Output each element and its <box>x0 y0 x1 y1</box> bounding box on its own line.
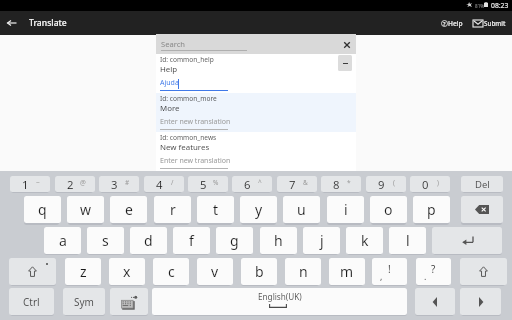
button[interactable]: 6 <box>232 176 272 192</box>
staticText: / <box>171 178 174 187</box>
staticText: c <box>168 262 175 281</box>
staticText: More <box>160 103 180 114</box>
button[interactable]: Right <box>460 288 501 315</box>
staticText: 2 <box>67 177 74 192</box>
button[interactable]: w <box>67 196 104 223</box>
staticText: Id: common_help <box>160 55 214 64</box>
button[interactable]: m <box>329 258 365 285</box>
staticText: 5 <box>200 177 207 192</box>
button[interactable]: Backspace <box>461 196 503 223</box>
button[interactable]: r <box>154 196 191 223</box>
button[interactable]: Remove <box>338 55 352 71</box>
staticText: Search <box>161 39 186 49</box>
button[interactable]: 1 <box>10 176 50 192</box>
other: Enter <box>461 236 473 245</box>
staticText: Ajuda <box>160 78 179 88</box>
button[interactable]: Left <box>415 288 455 315</box>
staticText: a <box>59 231 67 250</box>
staticText: Translate <box>29 17 67 29</box>
staticText: Help <box>448 19 463 28</box>
staticText: u <box>297 200 306 219</box>
button[interactable]: e <box>110 196 147 223</box>
button[interactable]: 2 <box>55 176 95 192</box>
staticText: Sym <box>74 295 94 309</box>
button[interactable]: 3 <box>99 176 139 192</box>
other: Shift <box>9 258 56 285</box>
staticText: New features <box>160 142 210 153</box>
button[interactable]: Id: common_help <box>156 54 356 93</box>
staticText: 6 <box>244 177 251 192</box>
button[interactable]: Id: common_more <box>156 93 356 132</box>
button[interactable]: . <box>416 258 451 285</box>
button[interactable]: 8 <box>321 176 361 192</box>
button[interactable]: o <box>370 196 407 223</box>
staticText: y <box>255 200 263 219</box>
button[interactable]: , <box>372 258 407 285</box>
button[interactable]: v <box>197 258 233 285</box>
staticText: q <box>38 200 47 219</box>
button[interactable]: q <box>24 196 61 223</box>
staticText: Del <box>475 178 490 191</box>
button[interactable]: ? <box>439 15 464 31</box>
staticText: w <box>80 200 92 219</box>
staticText: ? <box>443 20 446 27</box>
button[interactable]: l <box>389 227 426 254</box>
button[interactable]: z <box>65 258 101 285</box>
button[interactable]: Shift <box>9 258 56 285</box>
button[interactable]: b <box>241 258 277 285</box>
button[interactable]: y <box>240 196 277 223</box>
button[interactable]: i <box>327 196 364 223</box>
button[interactable]: Ctrl <box>9 288 54 315</box>
button[interactable]: Del <box>461 176 503 192</box>
staticText: p <box>427 200 436 219</box>
staticText: g <box>230 231 239 250</box>
staticText: 7 <box>289 177 296 192</box>
staticText: * <box>347 178 351 187</box>
button[interactable]: g <box>216 227 253 254</box>
button[interactable]: k <box>346 227 383 254</box>
other: Left <box>431 297 439 307</box>
staticText: o <box>384 200 393 219</box>
other: Backspace <box>475 205 489 214</box>
staticText: 4 <box>156 177 163 192</box>
staticText: % <box>213 178 219 187</box>
button[interactable]: t <box>197 196 234 223</box>
button[interactable]: Enter <box>432 227 502 254</box>
button[interactable]: 9 <box>366 176 406 192</box>
button[interactable]: Change keyboard <box>110 288 148 315</box>
button[interactable]: d <box>130 227 167 254</box>
button[interactable]: x <box>109 258 145 285</box>
button[interactable]: u <box>283 196 320 223</box>
staticText: 81% <box>475 3 485 9</box>
staticText: ^ <box>258 178 262 187</box>
staticText: Id: common_more <box>160 94 217 103</box>
other: Shift <box>460 258 507 285</box>
button[interactable]: s <box>87 227 124 254</box>
button[interactable]: Close <box>339 36 355 52</box>
staticText: t <box>213 200 219 219</box>
button[interactable]: a <box>44 227 81 254</box>
button[interactable]: 0 <box>410 176 450 192</box>
button[interactable]: f <box>173 227 210 254</box>
button[interactable]: 5 <box>188 176 228 192</box>
button[interactable]: j <box>303 227 340 254</box>
button[interactable]: 7 <box>277 176 317 192</box>
button[interactable]: p <box>413 196 450 223</box>
button[interactable]: Sym <box>63 288 105 315</box>
staticText: ! <box>388 262 391 276</box>
button[interactable]: n <box>285 258 321 285</box>
other: Right <box>477 297 485 307</box>
staticText: Help <box>160 64 178 75</box>
button[interactable]: Id: common_news <box>156 132 356 171</box>
button[interactable]: Back <box>0 11 24 35</box>
button[interactable]: 4 <box>144 176 184 192</box>
button[interactable]: Submit <box>472 15 505 31</box>
button[interactable]: h <box>260 227 297 254</box>
staticText: r <box>170 200 176 219</box>
button[interactable]: c <box>153 258 189 285</box>
staticText: m <box>340 262 354 281</box>
staticText: l <box>406 231 410 250</box>
staticText: ~ <box>36 178 40 187</box>
button[interactable]: English(UK) <box>152 288 407 315</box>
button[interactable]: Shift <box>460 258 507 285</box>
